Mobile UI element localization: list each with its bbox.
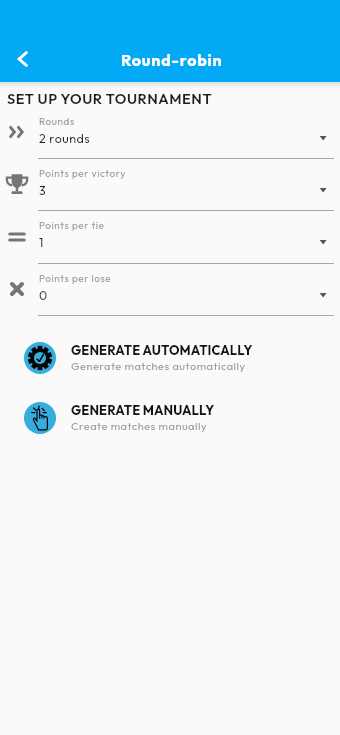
staticText: Rounds <box>39 115 75 128</box>
button[interactable]: GENERATE MANUALLY <box>0 388 340 448</box>
staticText: SET UP YOUR TOURNAMENT <box>7 89 213 107</box>
button[interactable]: Back <box>0 36 46 82</box>
staticText: 3 <box>39 182 47 198</box>
button[interactable]: GENERATE AUTOMATICALLY <box>0 328 340 388</box>
staticText: Points per victory <box>39 167 126 180</box>
button[interactable]: Points per victory <box>0 159 340 211</box>
staticText: Points per lose <box>39 272 112 285</box>
staticText: 0 <box>39 287 48 303</box>
staticText: Create matches manually <box>71 419 208 433</box>
staticText: Round-robin <box>121 50 223 70</box>
staticText: GENERATE MANUALLY <box>71 402 215 418</box>
staticText: Generate matches automatically <box>71 359 246 373</box>
staticText: 2 rounds <box>39 130 91 146</box>
button[interactable]: Points per tie <box>0 211 340 264</box>
staticText: 1 <box>39 234 44 250</box>
button[interactable]: Rounds <box>0 107 340 159</box>
button[interactable]: Points per lose <box>0 264 340 316</box>
staticText: Points per tie <box>39 219 105 232</box>
staticText: GENERATE AUTOMATICALLY <box>71 342 253 358</box>
